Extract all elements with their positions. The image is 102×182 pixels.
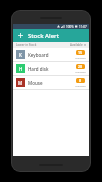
staticText: Available: [75, 84, 86, 87]
button[interactable]: M: [13, 76, 89, 89]
staticText: H: [19, 66, 23, 72]
staticText: M: [18, 80, 23, 86]
staticText: 20: [78, 64, 83, 69]
button[interactable]: H: [13, 62, 89, 75]
button[interactable]: 8: [76, 78, 85, 83]
button[interactable]: Add stock item: [16, 31, 25, 40]
staticText: Keyboard: [28, 52, 49, 58]
staticText: Hard disk: [28, 66, 49, 72]
staticText: 15: [78, 50, 83, 55]
staticText: Mouse: [28, 80, 43, 86]
staticText: 11:07: [79, 25, 87, 29]
button[interactable]: Available: [70, 43, 86, 47]
staticText: Lower in Stock: [16, 43, 37, 47]
staticText: Available: [70, 43, 83, 47]
staticText: Available: [75, 56, 86, 59]
staticText: Available: [75, 70, 86, 73]
staticText: 100%: [66, 25, 74, 29]
staticText: Stock Alert: [28, 32, 59, 40]
button[interactable]: 20: [76, 64, 85, 69]
button[interactable]: 15: [76, 50, 85, 55]
staticText: K: [19, 52, 22, 58]
staticText: 8: [79, 78, 82, 83]
button[interactable]: K: [13, 48, 89, 61]
